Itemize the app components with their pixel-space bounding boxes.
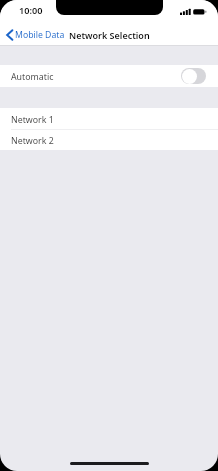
staticText: Automatic xyxy=(11,71,54,83)
button[interactable]: Automatic network selection toggle xyxy=(181,68,206,84)
button[interactable]: Network 1 xyxy=(0,108,218,129)
staticText: 10:00 xyxy=(19,4,43,17)
button[interactable]: Network 2 xyxy=(0,130,218,150)
staticText: Network 1 xyxy=(11,114,54,126)
staticText: Mobile Data xyxy=(15,29,65,41)
button[interactable]: Mobile Data xyxy=(5,28,65,40)
staticText: Network Selection xyxy=(69,29,150,41)
staticText: Network 2 xyxy=(11,135,54,147)
button[interactable]: Automatic xyxy=(0,65,218,87)
